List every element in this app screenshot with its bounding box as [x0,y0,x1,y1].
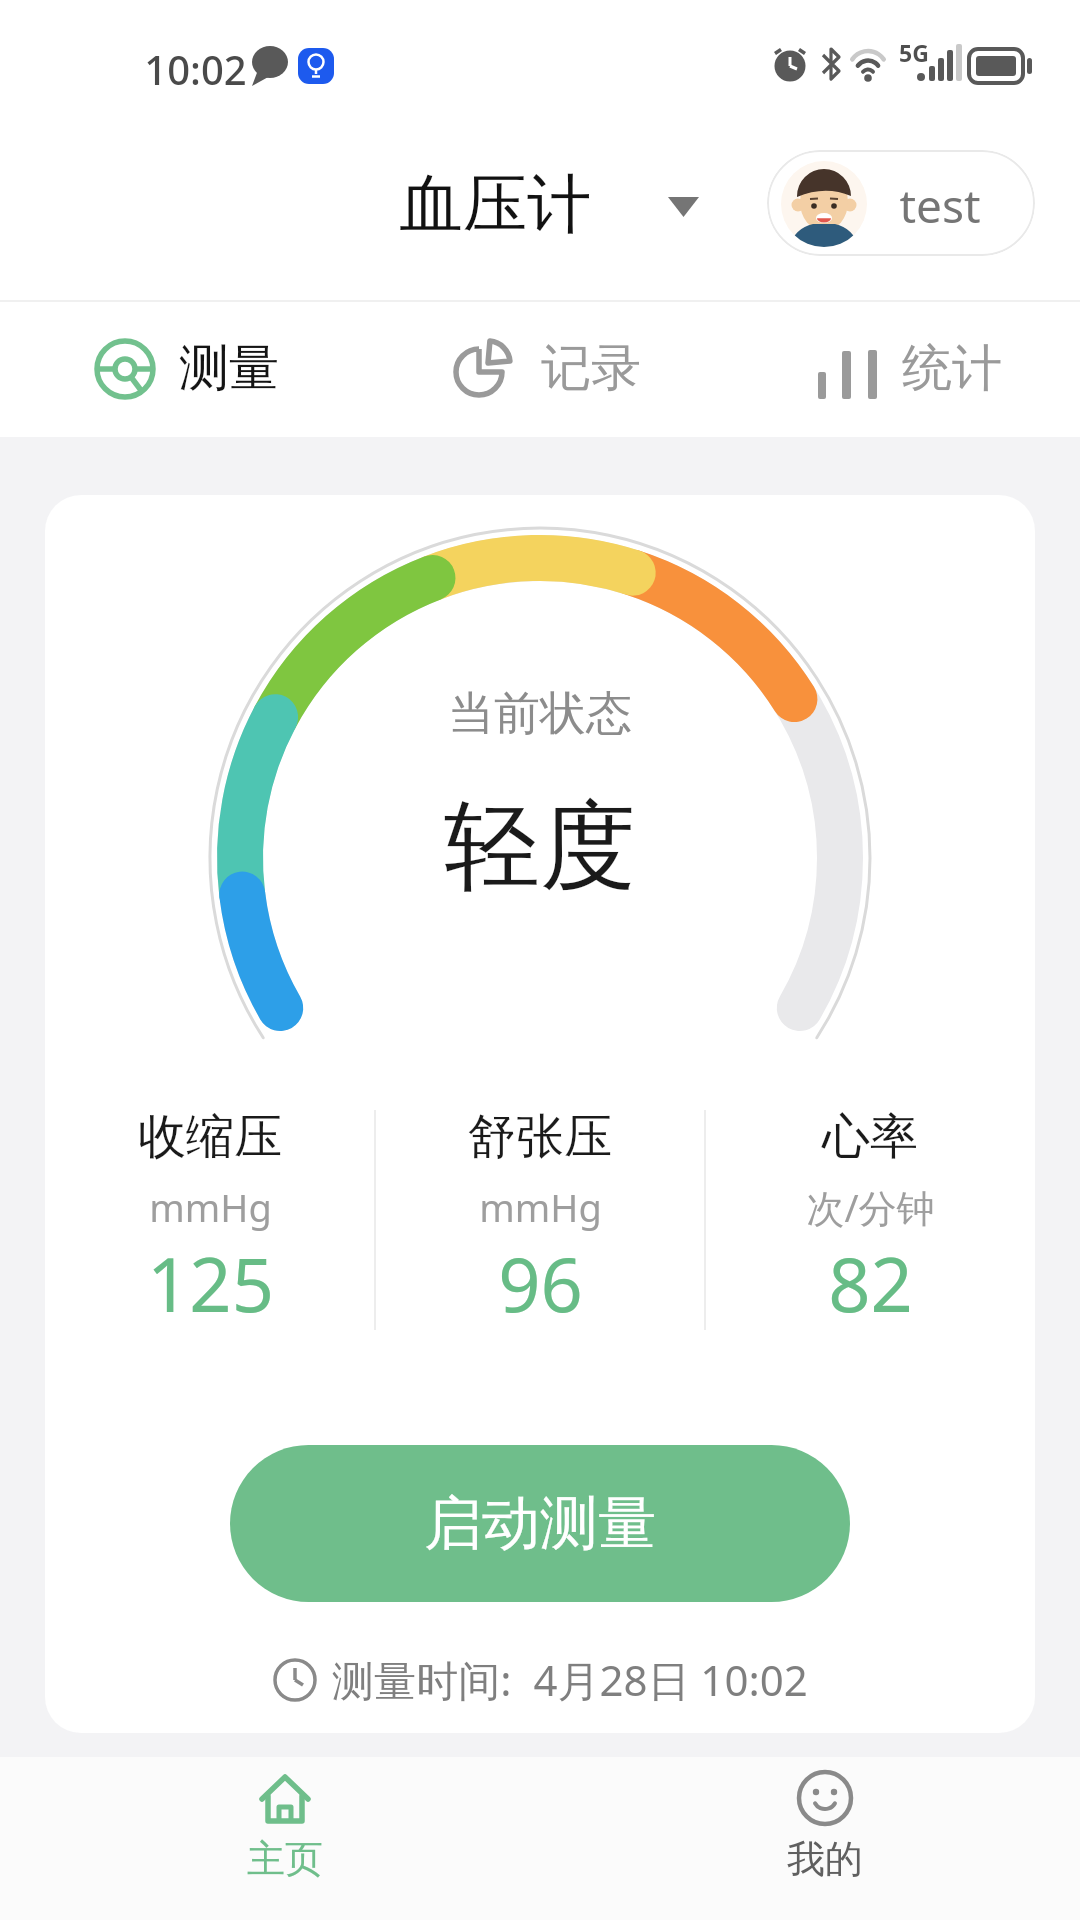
staticText: 5G [899,37,929,68]
staticText: mmHg [149,1181,272,1233]
staticText: 125 [147,1233,274,1334]
staticText: 统计 [902,337,1002,400]
staticText: 我的 [787,1835,863,1883]
staticText: 次/分钟 [806,1181,935,1233]
staticText: 当前状态 [448,685,632,743]
staticText: 舒张压 [468,1107,612,1167]
staticText: 10:02 [144,42,247,96]
staticText: 启动测量 [424,1487,656,1560]
staticText: 记录 [541,337,641,400]
staticText: 主页 [247,1835,323,1883]
button[interactable]: test [767,150,1035,256]
button[interactable]: 主页 [215,1767,355,1883]
staticText: 96 [498,1233,583,1334]
staticText: 轻度 [444,787,636,908]
button[interactable]: 测量 [93,300,279,437]
staticText: 血压计 [399,164,591,245]
staticText: 82 [828,1233,913,1334]
staticText: mmHg [479,1181,602,1233]
button[interactable]: 统计 [816,300,1002,437]
staticText: 测量 [179,337,279,400]
staticText: 心率 [822,1107,918,1167]
button[interactable]: 记录 [453,300,641,437]
button[interactable]: 我的 [755,1767,895,1883]
staticText: 收缩压 [138,1107,282,1167]
button[interactable]: 启动测量 [230,1445,850,1602]
staticText: test [899,174,981,237]
staticText: 测量时间: 4月28日 10:02 [332,1651,808,1708]
